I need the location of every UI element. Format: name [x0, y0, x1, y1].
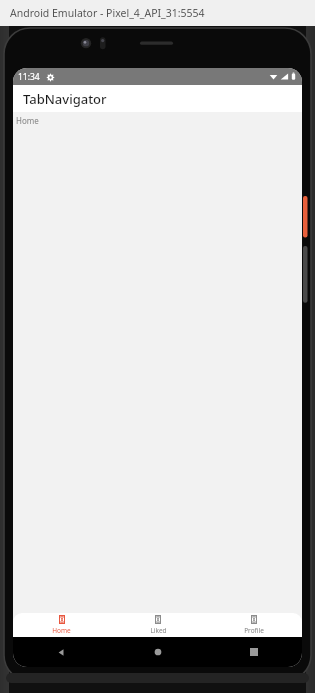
- staticText: Home: [16, 115, 39, 126]
- staticText: Home: [52, 626, 71, 635]
- staticText: Profile: [244, 626, 264, 635]
- staticText: 11:34: [18, 71, 40, 83]
- button[interactable]: Profile: [206, 613, 302, 637]
- button[interactable]: Home: [13, 613, 110, 637]
- other: Profile: [251, 615, 257, 624]
- button[interactable]: Home: [110, 637, 206, 667]
- staticText: Android Emulator - Pixel_4_API_31:5554: [10, 6, 205, 20]
- button[interactable]: Liked: [110, 613, 206, 637]
- button[interactable]: Recent apps: [206, 637, 302, 667]
- staticText: Liked: [150, 626, 167, 635]
- staticText: TabNavigator: [23, 90, 107, 108]
- button[interactable]: Back: [13, 637, 110, 667]
- other: Liked: [155, 615, 161, 624]
- other: Home: [59, 615, 65, 624]
